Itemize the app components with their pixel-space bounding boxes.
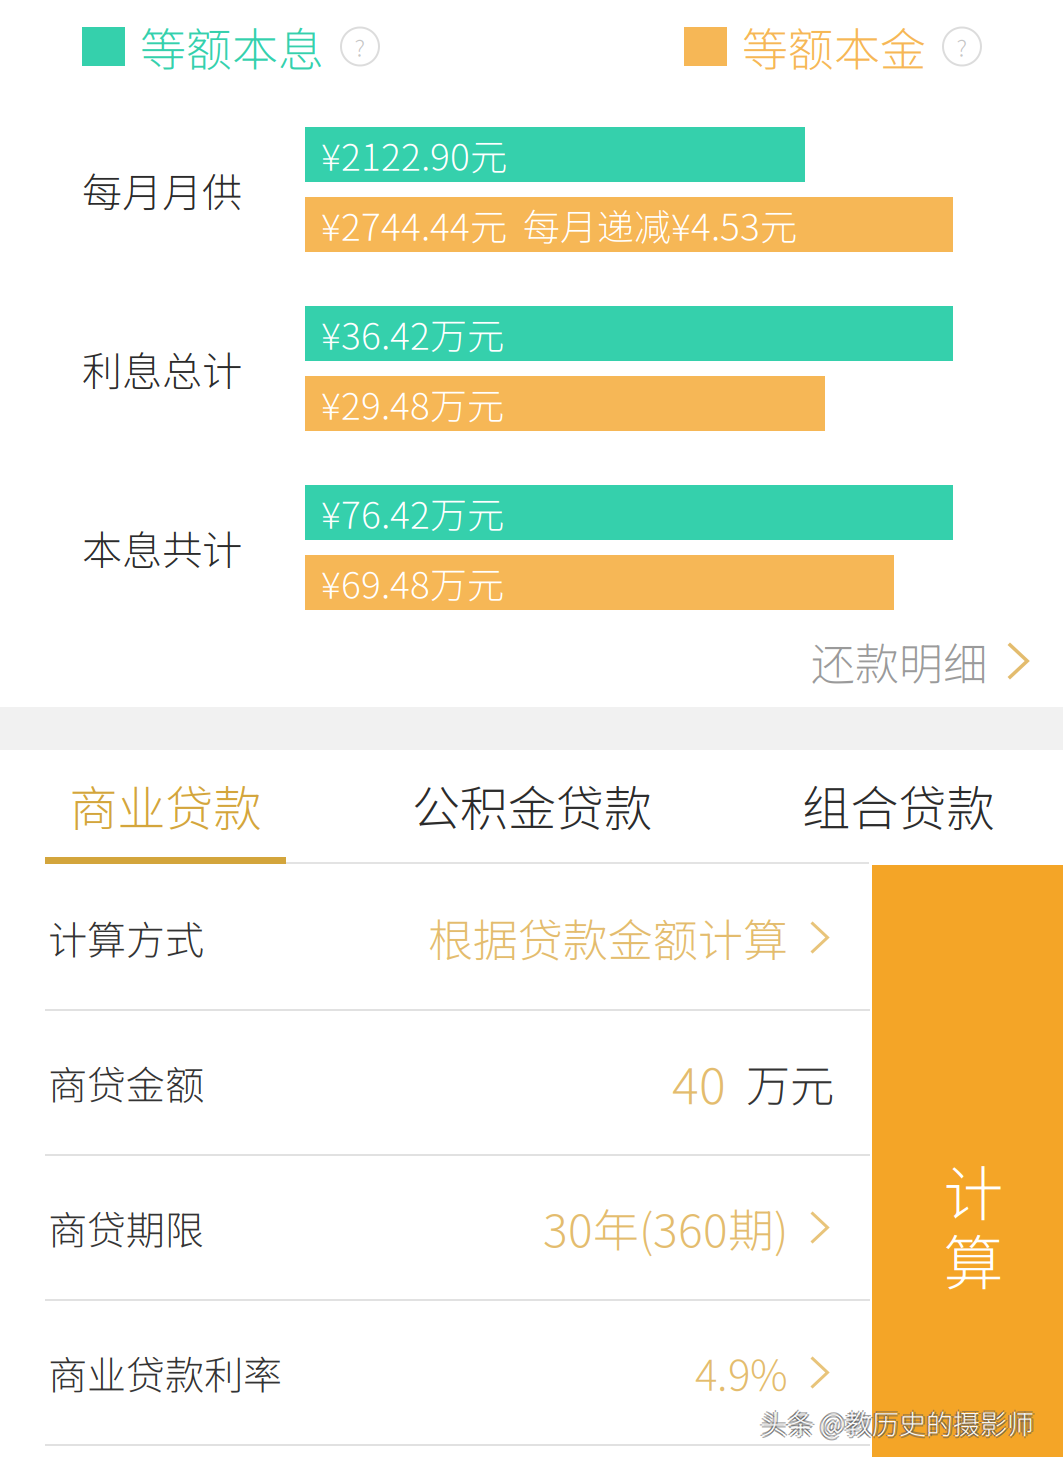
staticText: 还款明细	[811, 629, 987, 693]
staticText: 头条 @教历史的摄影师	[760, 1403, 1034, 1442]
staticText: 商业贷款利率	[48, 1344, 282, 1401]
staticText: ¥69.48万元	[321, 556, 504, 609]
staticText: 计	[943, 1147, 1003, 1233]
staticText: ?	[354, 29, 365, 63]
staticText: 组合贷款	[802, 770, 994, 840]
button[interactable]: 还款明细	[0, 624, 1063, 698]
button[interactable]: 公积金贷款	[410, 750, 654, 864]
staticText: 商贷金额	[48, 1054, 204, 1111]
staticText: ¥2744.44元 每月递减¥4.53元	[321, 198, 797, 251]
staticText: ¥76.42万元	[321, 486, 504, 539]
button[interactable]: 等额本金	[684, 13, 981, 80]
staticText: 根据贷款金额计算	[428, 905, 788, 970]
staticText: 等额本金	[742, 13, 926, 80]
staticText: 本息共计	[82, 518, 242, 576]
staticText: 4.9%	[695, 1342, 788, 1403]
staticText: 商业贷款	[69, 770, 261, 840]
button[interactable]: 组合贷款	[801, 750, 996, 864]
staticText: 每月月供	[82, 160, 242, 218]
staticText: 30年(360期)	[543, 1194, 788, 1261]
button[interactable]: 商业贷款利率	[0, 1301, 870, 1444]
button[interactable]: 计算方式	[0, 866, 870, 1009]
button[interactable]: 等额本息	[82, 13, 379, 80]
staticText: 利息总计	[82, 339, 242, 397]
button[interactable]: 计	[872, 865, 1063, 1457]
staticText: 头条 @教历史的摄影师	[762, 1403, 1036, 1442]
button[interactable]: 商业贷款	[45, 750, 286, 864]
button[interactable]: 商贷金额	[0, 1011, 870, 1154]
staticText: 头条 @教历史的摄影师	[760, 1405, 1034, 1444]
staticText: ¥2122.90元	[321, 128, 507, 181]
staticText: 万元	[746, 1051, 834, 1114]
button[interactable]: 商贷期限	[0, 1156, 870, 1299]
staticText: 公积金贷款	[412, 770, 652, 840]
staticText: 算	[943, 1216, 1003, 1302]
staticText: 40	[672, 1046, 726, 1119]
staticText: ?	[956, 29, 967, 63]
staticText: ¥36.42万元	[321, 307, 504, 360]
staticText: 头条 @教历史的摄影师	[758, 1403, 1032, 1442]
staticText: 等额本息	[140, 13, 324, 80]
staticText: 计算方式	[48, 909, 204, 966]
staticText: ¥29.48万元	[321, 377, 504, 430]
staticText: 头条 @教历史的摄影师	[760, 1401, 1034, 1440]
staticText: 商贷期限	[48, 1199, 204, 1256]
